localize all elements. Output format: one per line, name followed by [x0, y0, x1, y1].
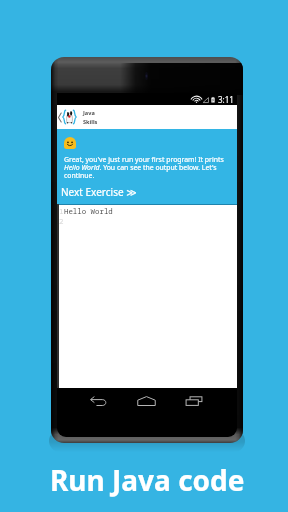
staticText: Hello World [64, 206, 113, 216]
staticText: 3:11 [218, 94, 234, 105]
staticText: Run Java code [50, 461, 245, 499]
staticText: Great, you've just run your first progra… [64, 155, 224, 180]
button[interactable]: Recent apps [181, 393, 207, 409]
staticText: 1 [59, 206, 64, 216]
button[interactable]: Home [133, 393, 159, 409]
staticText: Java [83, 109, 95, 117]
button[interactable]: Back [85, 393, 111, 409]
staticText: Skills [83, 118, 98, 126]
staticText: Next Exercise ≫ [61, 185, 137, 199]
staticText: 2 [59, 216, 64, 226]
button[interactable]: Back [57, 105, 237, 129]
button[interactable]: Next Exercise ≫ [57, 185, 237, 199]
other: Back [58, 113, 62, 122]
